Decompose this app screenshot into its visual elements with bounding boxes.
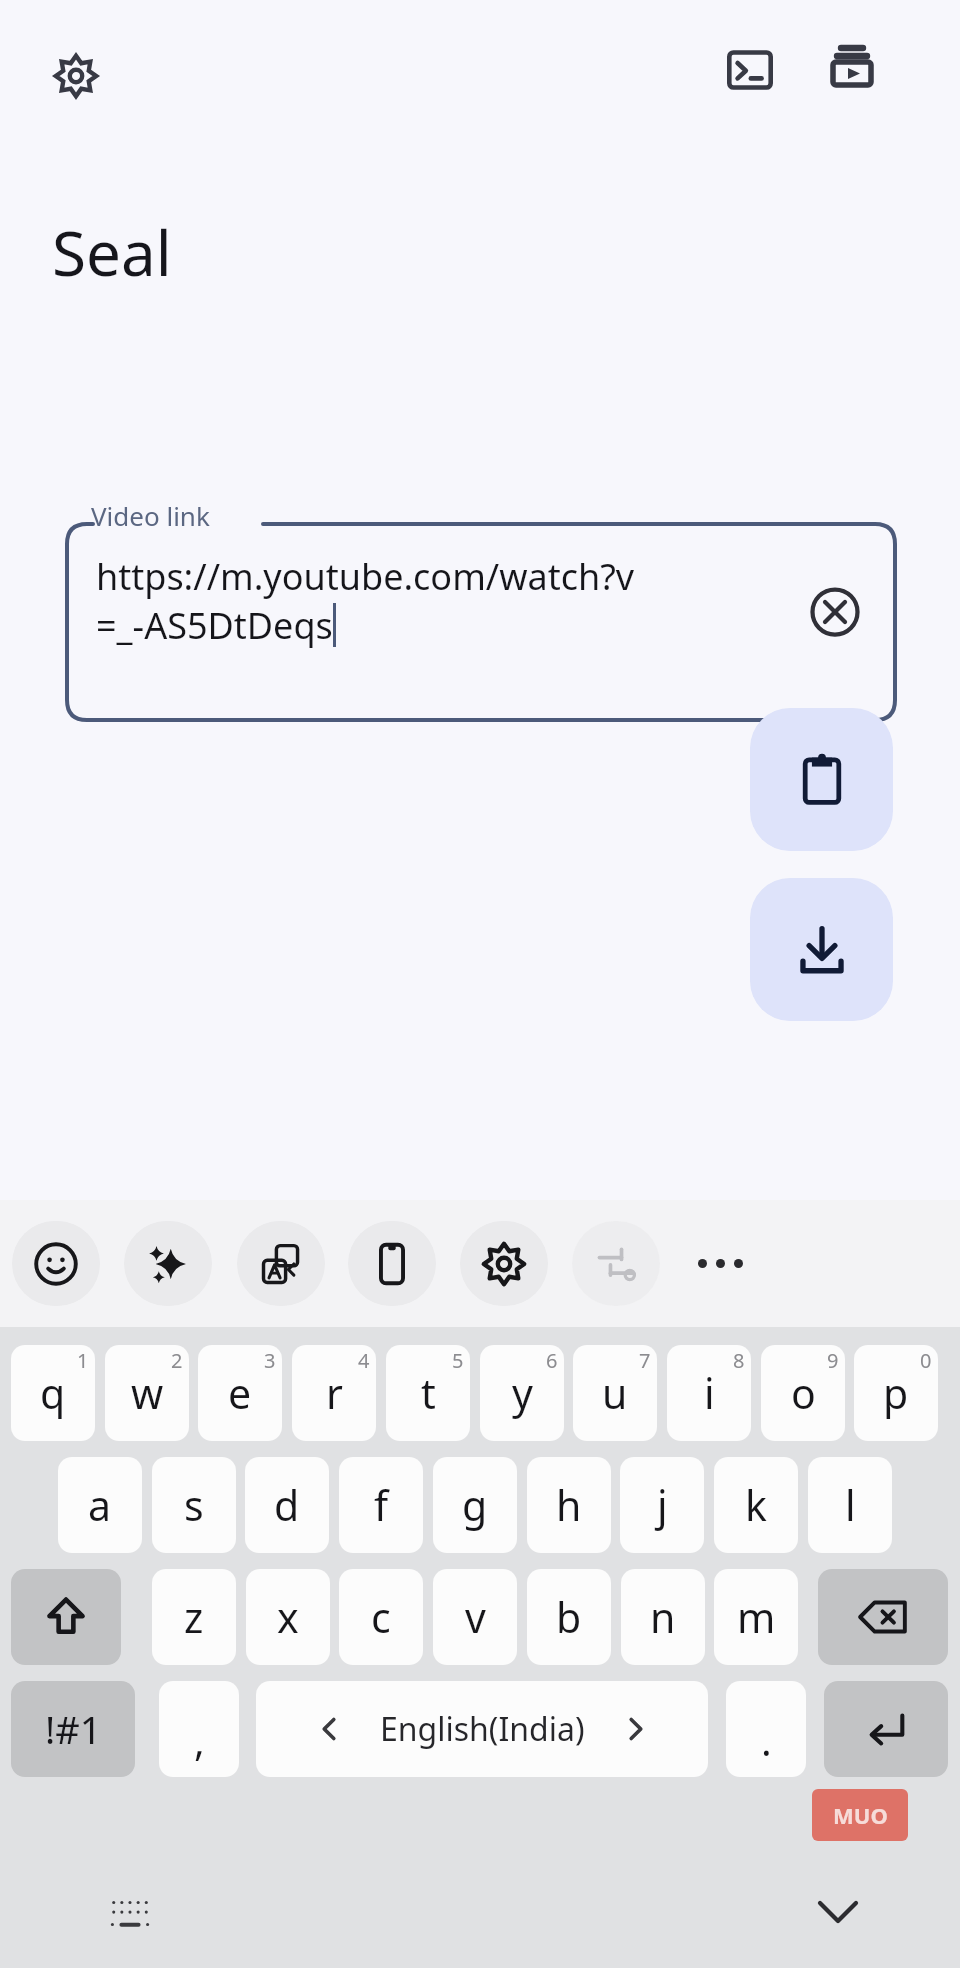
button[interactable]: t xyxy=(386,1345,470,1441)
staticText: n xyxy=(650,1589,676,1645)
staticText: https://m.youtube.com/watch?v xyxy=(96,552,635,601)
button[interactable]: f xyxy=(339,1457,423,1553)
staticText: h xyxy=(556,1477,582,1533)
button[interactable]: Clear xyxy=(797,574,873,650)
button[interactable]: v xyxy=(433,1569,517,1665)
staticText: i xyxy=(704,1365,715,1421)
staticText: . xyxy=(761,1713,772,1767)
staticText: y xyxy=(512,1365,533,1421)
staticText: 9 xyxy=(827,1347,839,1374)
button[interactable]: m xyxy=(714,1569,798,1665)
staticText: 1 xyxy=(77,1347,89,1374)
staticText: 4 xyxy=(358,1347,370,1374)
staticText: j xyxy=(657,1477,668,1533)
staticText: e xyxy=(228,1365,252,1421)
button[interactable]: Settings xyxy=(40,40,112,112)
button[interactable]: q xyxy=(11,1345,95,1441)
button[interactable]: l xyxy=(808,1457,892,1553)
button[interactable]: h xyxy=(527,1457,611,1553)
button[interactable]: Enter xyxy=(824,1681,948,1777)
button[interactable]: w xyxy=(105,1345,189,1441)
staticText: g xyxy=(462,1477,488,1533)
staticText: !#1 xyxy=(45,1703,102,1755)
button[interactable]: p xyxy=(854,1345,938,1441)
staticText: w xyxy=(131,1365,164,1421)
staticText: d xyxy=(274,1477,300,1533)
button[interactable]: Paste from clipboard xyxy=(750,708,893,851)
button[interactable]: x xyxy=(246,1569,330,1665)
button[interactable]: Keyboard tool 2 xyxy=(124,1221,212,1306)
staticText: 6 xyxy=(546,1347,558,1374)
staticText: c xyxy=(371,1589,391,1645)
staticText: a xyxy=(88,1477,112,1533)
button[interactable]: g xyxy=(433,1457,517,1553)
staticText: z xyxy=(184,1589,204,1645)
button[interactable]: r xyxy=(292,1345,376,1441)
staticText: MUO xyxy=(833,1800,888,1830)
staticText: Seal xyxy=(52,210,172,294)
staticText: 7 xyxy=(639,1347,651,1374)
staticText: t xyxy=(421,1365,436,1421)
button[interactable]: z xyxy=(152,1569,236,1665)
button[interactable]: b xyxy=(527,1569,611,1665)
button[interactable]: Keyboard layout xyxy=(92,1883,168,1943)
staticText: o xyxy=(791,1365,816,1421)
staticText: English(India) xyxy=(380,1707,585,1751)
button[interactable]: i xyxy=(667,1345,751,1441)
button[interactable]: c xyxy=(339,1569,423,1665)
button[interactable]: !#1 xyxy=(11,1681,135,1777)
button[interactable]: Shift xyxy=(11,1569,121,1665)
button[interactable]: Video link xyxy=(67,512,895,720)
staticText: Video link xyxy=(91,498,210,533)
button[interactable]: Keyboard tool 6 xyxy=(572,1221,660,1306)
staticText: q xyxy=(40,1365,66,1421)
button[interactable]: Hide keyboard xyxy=(792,1875,884,1947)
button[interactable]: More options xyxy=(678,1221,762,1306)
button[interactable]: Keyboard tool 4 xyxy=(348,1221,436,1306)
staticText: k xyxy=(745,1477,767,1533)
button[interactable]: e xyxy=(198,1345,282,1441)
button[interactable]: . xyxy=(726,1681,806,1777)
button[interactable]: n xyxy=(621,1569,705,1665)
button[interactable]: j xyxy=(620,1457,704,1553)
staticText: 0 xyxy=(920,1347,932,1374)
button[interactable]: Keyboard tool 5 xyxy=(460,1221,548,1306)
button[interactable]: a xyxy=(58,1457,142,1553)
button[interactable]: Downloads xyxy=(816,32,888,104)
staticText: r xyxy=(326,1365,343,1421)
button[interactable]: Backspace xyxy=(818,1569,948,1665)
staticText: 5 xyxy=(452,1347,464,1374)
button[interactable]: Download xyxy=(750,878,893,1021)
button[interactable]: o xyxy=(761,1345,845,1441)
staticText: 3 xyxy=(264,1347,276,1374)
button[interactable]: Keyboard tool 3 xyxy=(237,1221,325,1306)
staticText: p xyxy=(883,1365,909,1421)
staticText: x xyxy=(277,1589,299,1645)
button[interactable]: k xyxy=(714,1457,798,1553)
staticText: 2 xyxy=(171,1347,183,1374)
staticText: b xyxy=(556,1589,582,1645)
button[interactable]: y xyxy=(480,1345,564,1441)
button[interactable]: s xyxy=(152,1457,236,1553)
staticText: =_-AS5DtDeqs xyxy=(96,601,333,650)
button[interactable]: , xyxy=(159,1681,239,1777)
staticText: v xyxy=(465,1589,486,1645)
staticText: , xyxy=(194,1713,205,1767)
button[interactable]: English(India) xyxy=(256,1681,708,1777)
staticText: m xyxy=(737,1589,776,1645)
staticText: u xyxy=(602,1365,628,1421)
button[interactable]: Command xyxy=(714,34,786,106)
staticText: l xyxy=(845,1477,856,1533)
button[interactable]: Keyboard tool 1 xyxy=(12,1221,100,1306)
button[interactable]: u xyxy=(573,1345,657,1441)
staticText: f xyxy=(374,1477,389,1533)
staticText: s xyxy=(184,1477,204,1533)
button[interactable]: d xyxy=(245,1457,329,1553)
staticText: 8 xyxy=(733,1347,745,1374)
